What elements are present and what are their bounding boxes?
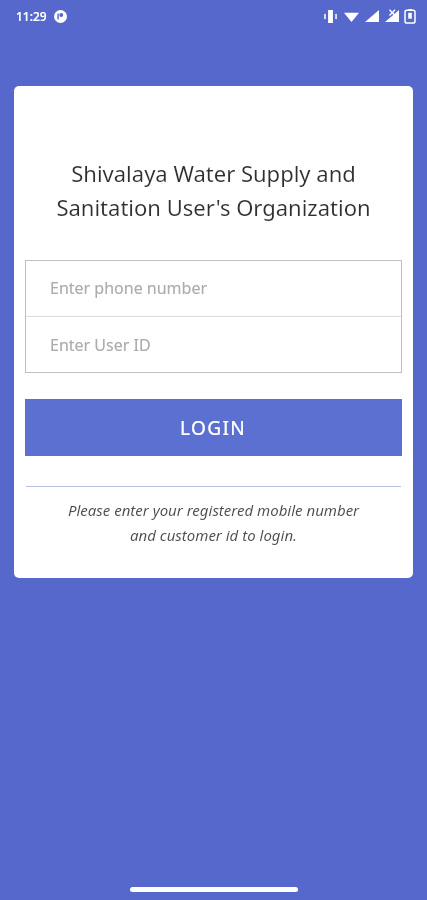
- button[interactable]: LOGIN: [25, 399, 402, 456]
- staticText: LOGIN: [180, 415, 247, 441]
- staticText: Shivalaya Water Supply and Sanitation Us…: [26, 158, 401, 222]
- staticText: Enter User ID: [50, 334, 151, 356]
- button[interactable]: Enter phone number: [25, 260, 402, 316]
- staticText: Enter phone number: [50, 277, 208, 299]
- staticText: Please enter your registered mobile numb…: [28, 500, 399, 545]
- staticText: 11:29: [16, 8, 47, 24]
- button[interactable]: Enter User ID: [25, 317, 402, 373]
